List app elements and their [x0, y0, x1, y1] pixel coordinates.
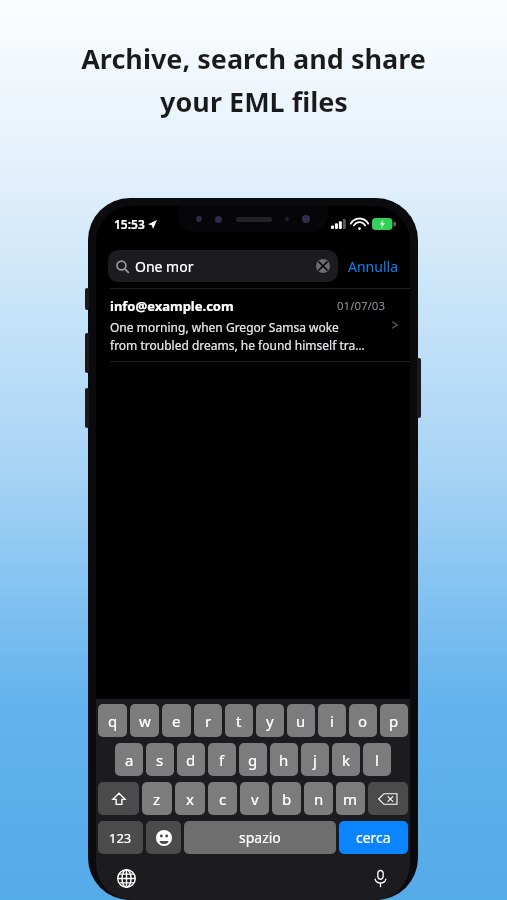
staticText: info@example.com — [110, 297, 234, 315]
button[interactable]: x — [175, 782, 205, 815]
button[interactable]: c — [208, 782, 237, 815]
button[interactable]: Shift — [98, 782, 139, 815]
button[interactable]: a — [115, 743, 143, 776]
button[interactable]: z — [142, 782, 172, 815]
button[interactable]: info@example.com — [96, 288, 410, 362]
button[interactable]: d — [177, 743, 205, 776]
staticText: 123 — [109, 829, 132, 847]
staticText: t — [236, 711, 242, 731]
button[interactable]: f — [208, 743, 236, 776]
button[interactable]: cerca — [339, 821, 408, 854]
staticText: o — [358, 711, 368, 731]
staticText: z — [153, 789, 161, 809]
button[interactable]: Clear — [316, 259, 330, 273]
button[interactable]: k — [332, 743, 360, 776]
staticText: n — [314, 789, 324, 809]
button[interactable]: r — [194, 704, 222, 737]
staticText: Archive, search and share — [81, 40, 426, 77]
staticText: l — [375, 750, 379, 770]
button[interactable]: v — [240, 782, 269, 815]
staticText: b — [282, 789, 292, 809]
staticText: from troubled dreams, he found himself t… — [110, 337, 365, 353]
button[interactable]: One mor — [108, 250, 338, 282]
staticText: k — [342, 750, 351, 770]
staticText: r — [205, 711, 212, 731]
staticText: cerca — [356, 828, 391, 847]
staticText: y — [266, 711, 274, 731]
button[interactable]: h — [270, 743, 298, 776]
button[interactable]: l — [363, 743, 391, 776]
button[interactable]: g — [239, 743, 267, 776]
staticText: f — [219, 750, 225, 770]
button[interactable]: o — [349, 704, 377, 737]
staticText: d — [186, 750, 196, 770]
button[interactable]: Backspace — [368, 782, 408, 815]
button[interactable]: e — [162, 704, 191, 737]
staticText: e — [172, 711, 181, 731]
staticText: 01/07/03 — [337, 298, 386, 314]
staticText: w — [139, 711, 151, 731]
button[interactable]: 123 — [98, 821, 143, 854]
button[interactable]: m — [336, 782, 365, 815]
staticText: v — [251, 789, 259, 809]
button[interactable]: Change keyboard — [114, 866, 138, 890]
staticText: One mor — [135, 257, 194, 276]
button[interactable]: s — [146, 743, 174, 776]
button[interactable]: Annulla — [346, 253, 400, 280]
button[interactable]: b — [272, 782, 301, 815]
button[interactable]: t — [225, 704, 253, 737]
staticText: u — [296, 711, 306, 731]
button[interactable]: u — [287, 704, 315, 737]
button[interactable]: Dictation — [368, 866, 392, 890]
staticText: h — [279, 750, 289, 770]
button[interactable]: Emoji — [146, 821, 181, 854]
button[interactable]: n — [304, 782, 333, 815]
staticText: i — [330, 711, 334, 731]
staticText: p — [389, 711, 399, 731]
button[interactable]: i — [318, 704, 346, 737]
staticText: j — [313, 750, 317, 770]
staticText: your EML files — [160, 83, 348, 120]
staticText: x — [186, 789, 194, 809]
staticText: m — [343, 789, 358, 809]
staticText: a — [125, 750, 134, 770]
button[interactable]: spazio — [184, 821, 336, 854]
staticText: c — [219, 789, 227, 809]
button[interactable]: q — [98, 704, 127, 737]
staticText: s — [156, 750, 164, 770]
staticText: One morning, when Gregor Samsa woke — [110, 319, 339, 335]
staticText: g — [248, 750, 258, 770]
staticText: 15:53 — [114, 216, 145, 232]
button[interactable]: p — [380, 704, 408, 737]
button[interactable]: j — [301, 743, 329, 776]
staticText: Annulla — [348, 257, 398, 276]
staticText: q — [108, 711, 118, 731]
button[interactable]: w — [130, 704, 159, 737]
staticText: spazio — [239, 828, 281, 847]
button[interactable]: y — [256, 704, 284, 737]
